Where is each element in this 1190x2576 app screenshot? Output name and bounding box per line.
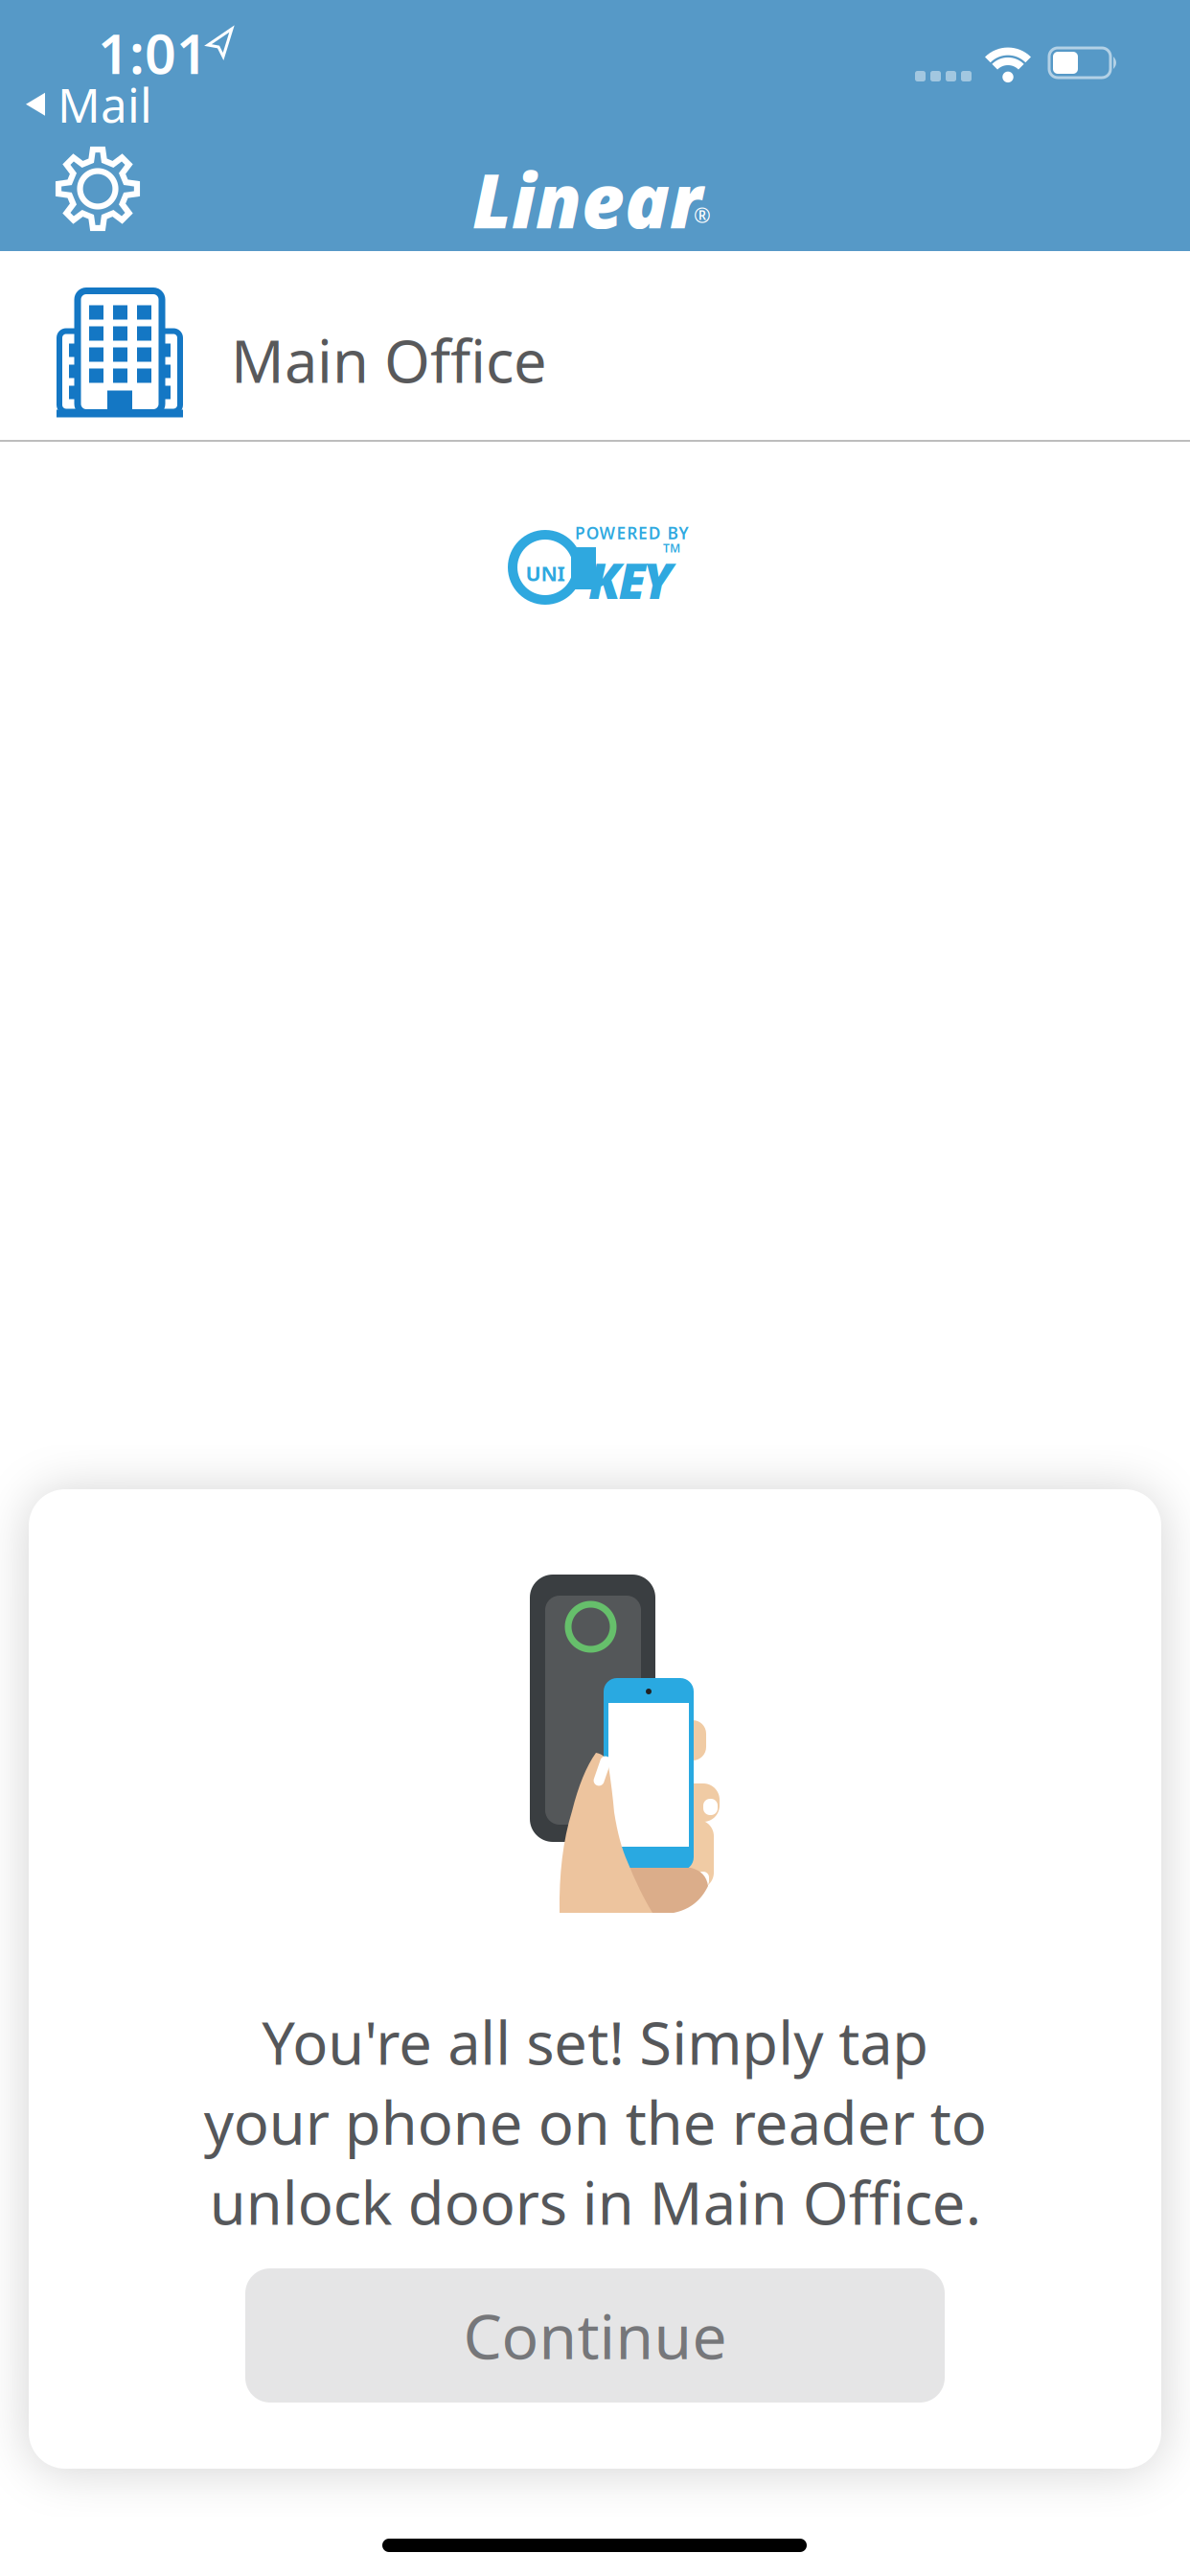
- staticText: 1:01: [98, 16, 208, 89]
- staticText: Linear: [472, 150, 702, 249]
- staticText: Mail: [57, 73, 152, 136]
- staticText: UNI: [526, 560, 565, 587]
- staticText: You're all set! Simply tap your phone on…: [204, 2003, 986, 2241]
- staticText: TM: [663, 540, 680, 556]
- staticText: KEY: [588, 548, 673, 613]
- staticText: ®: [694, 201, 711, 228]
- button[interactable]: Back to Mail: [26, 73, 152, 136]
- staticText: Main Office: [231, 321, 547, 399]
- staticText: POWERED BY: [575, 522, 688, 544]
- button[interactable]: Settings: [57, 148, 139, 230]
- button[interactable]: Main Office: [0, 251, 1190, 442]
- staticText: Continue: [463, 2295, 727, 2376]
- button[interactable]: Continue: [245, 2268, 945, 2403]
